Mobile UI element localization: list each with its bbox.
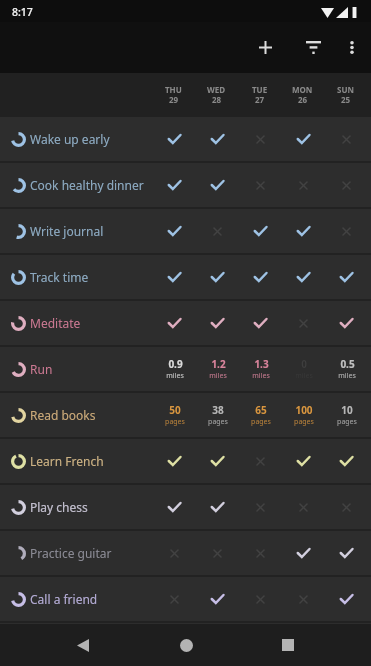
staticText: TUE	[252, 84, 268, 95]
button[interactable]: Meditate	[0, 301, 371, 345]
staticText: 10	[341, 403, 353, 417]
button[interactable]: Learn French	[0, 439, 371, 483]
staticText: 1.3	[254, 357, 269, 371]
staticText: pages	[251, 417, 271, 427]
staticText: 29	[169, 94, 179, 105]
staticText: pages	[337, 417, 357, 427]
staticText: pages	[165, 417, 185, 427]
button[interactable]: More options	[329, 25, 371, 70]
staticText: pages	[294, 417, 314, 427]
button[interactable]: Read books	[0, 393, 371, 437]
staticText: 28	[212, 94, 222, 105]
button[interactable]: Filter	[291, 25, 336, 70]
staticText: Learn French	[30, 453, 104, 469]
button[interactable]: Run	[0, 347, 371, 391]
button[interactable]: Play chess	[0, 485, 371, 529]
staticText: miles	[252, 371, 270, 381]
staticText: 27	[255, 94, 265, 105]
staticText: Run	[30, 361, 53, 377]
staticText: MON	[292, 84, 313, 95]
button[interactable]: Track time	[0, 255, 371, 299]
button[interactable]: Wake up early	[0, 117, 371, 161]
staticText: 0	[301, 357, 307, 371]
button[interactable]: Home	[165, 624, 207, 666]
staticText: miles	[166, 371, 184, 381]
staticText: Call a friend	[30, 591, 98, 607]
staticText: Practice guitar	[30, 545, 112, 561]
staticText: Write journal	[30, 223, 104, 239]
staticText: Wake up early	[30, 131, 110, 147]
button[interactable]: Write journal	[0, 209, 371, 253]
staticText: 0.5	[340, 357, 355, 371]
staticText: Meditate	[30, 315, 81, 331]
staticText: 0.9	[168, 357, 183, 371]
button[interactable]: Cook healthy dinner	[0, 163, 371, 207]
staticText: 38	[212, 403, 224, 417]
staticText: 8:17	[12, 5, 33, 19]
staticText: 25	[341, 94, 351, 105]
button[interactable]: Practice guitar	[0, 531, 371, 575]
staticText: Play chess	[30, 499, 88, 515]
staticText: pages	[208, 417, 228, 427]
staticText: miles	[209, 371, 227, 381]
staticText: 1.2	[211, 357, 226, 371]
staticText: 100	[295, 403, 313, 417]
button[interactable]: Add habit	[243, 25, 288, 70]
staticText: Track time	[30, 269, 89, 285]
staticText: 65	[255, 403, 267, 417]
staticText: miles	[338, 371, 356, 381]
staticText: WED	[207, 84, 226, 95]
staticText: 50	[169, 403, 181, 417]
staticText: 26	[298, 94, 308, 105]
staticText: THU	[165, 84, 182, 95]
staticText: Cook healthy dinner	[30, 177, 144, 193]
button[interactable]: Call a friend	[0, 577, 371, 621]
button[interactable]: Recents	[267, 624, 309, 666]
button[interactable]: Back	[62, 624, 103, 666]
staticText: Read books	[30, 407, 96, 423]
staticText: SUN	[337, 84, 354, 95]
